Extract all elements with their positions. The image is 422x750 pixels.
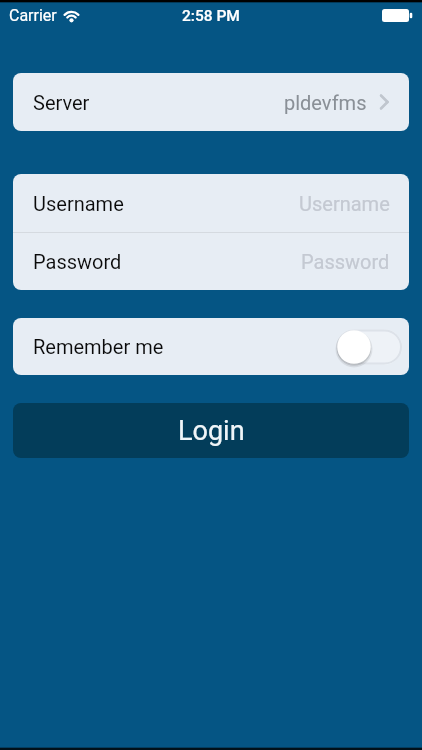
button[interactable]: Username bbox=[33, 174, 390, 232]
staticText: Password bbox=[301, 250, 390, 273]
staticText: Remember me bbox=[33, 335, 164, 358]
staticText: pldevfms bbox=[284, 91, 367, 114]
staticText: Login bbox=[178, 415, 245, 447]
button[interactable]: Login bbox=[13, 403, 409, 458]
button[interactable]: Password bbox=[33, 233, 390, 290]
staticText: Username bbox=[33, 192, 124, 215]
button[interactable]: Server bbox=[13, 73, 409, 131]
staticText: Carrier bbox=[9, 6, 57, 25]
staticText: 2:58 PM bbox=[182, 7, 240, 25]
staticText: Server bbox=[33, 91, 90, 114]
staticText: Username bbox=[299, 192, 390, 215]
staticText: Password bbox=[33, 250, 122, 273]
button[interactable]: Remember me bbox=[13, 318, 409, 375]
